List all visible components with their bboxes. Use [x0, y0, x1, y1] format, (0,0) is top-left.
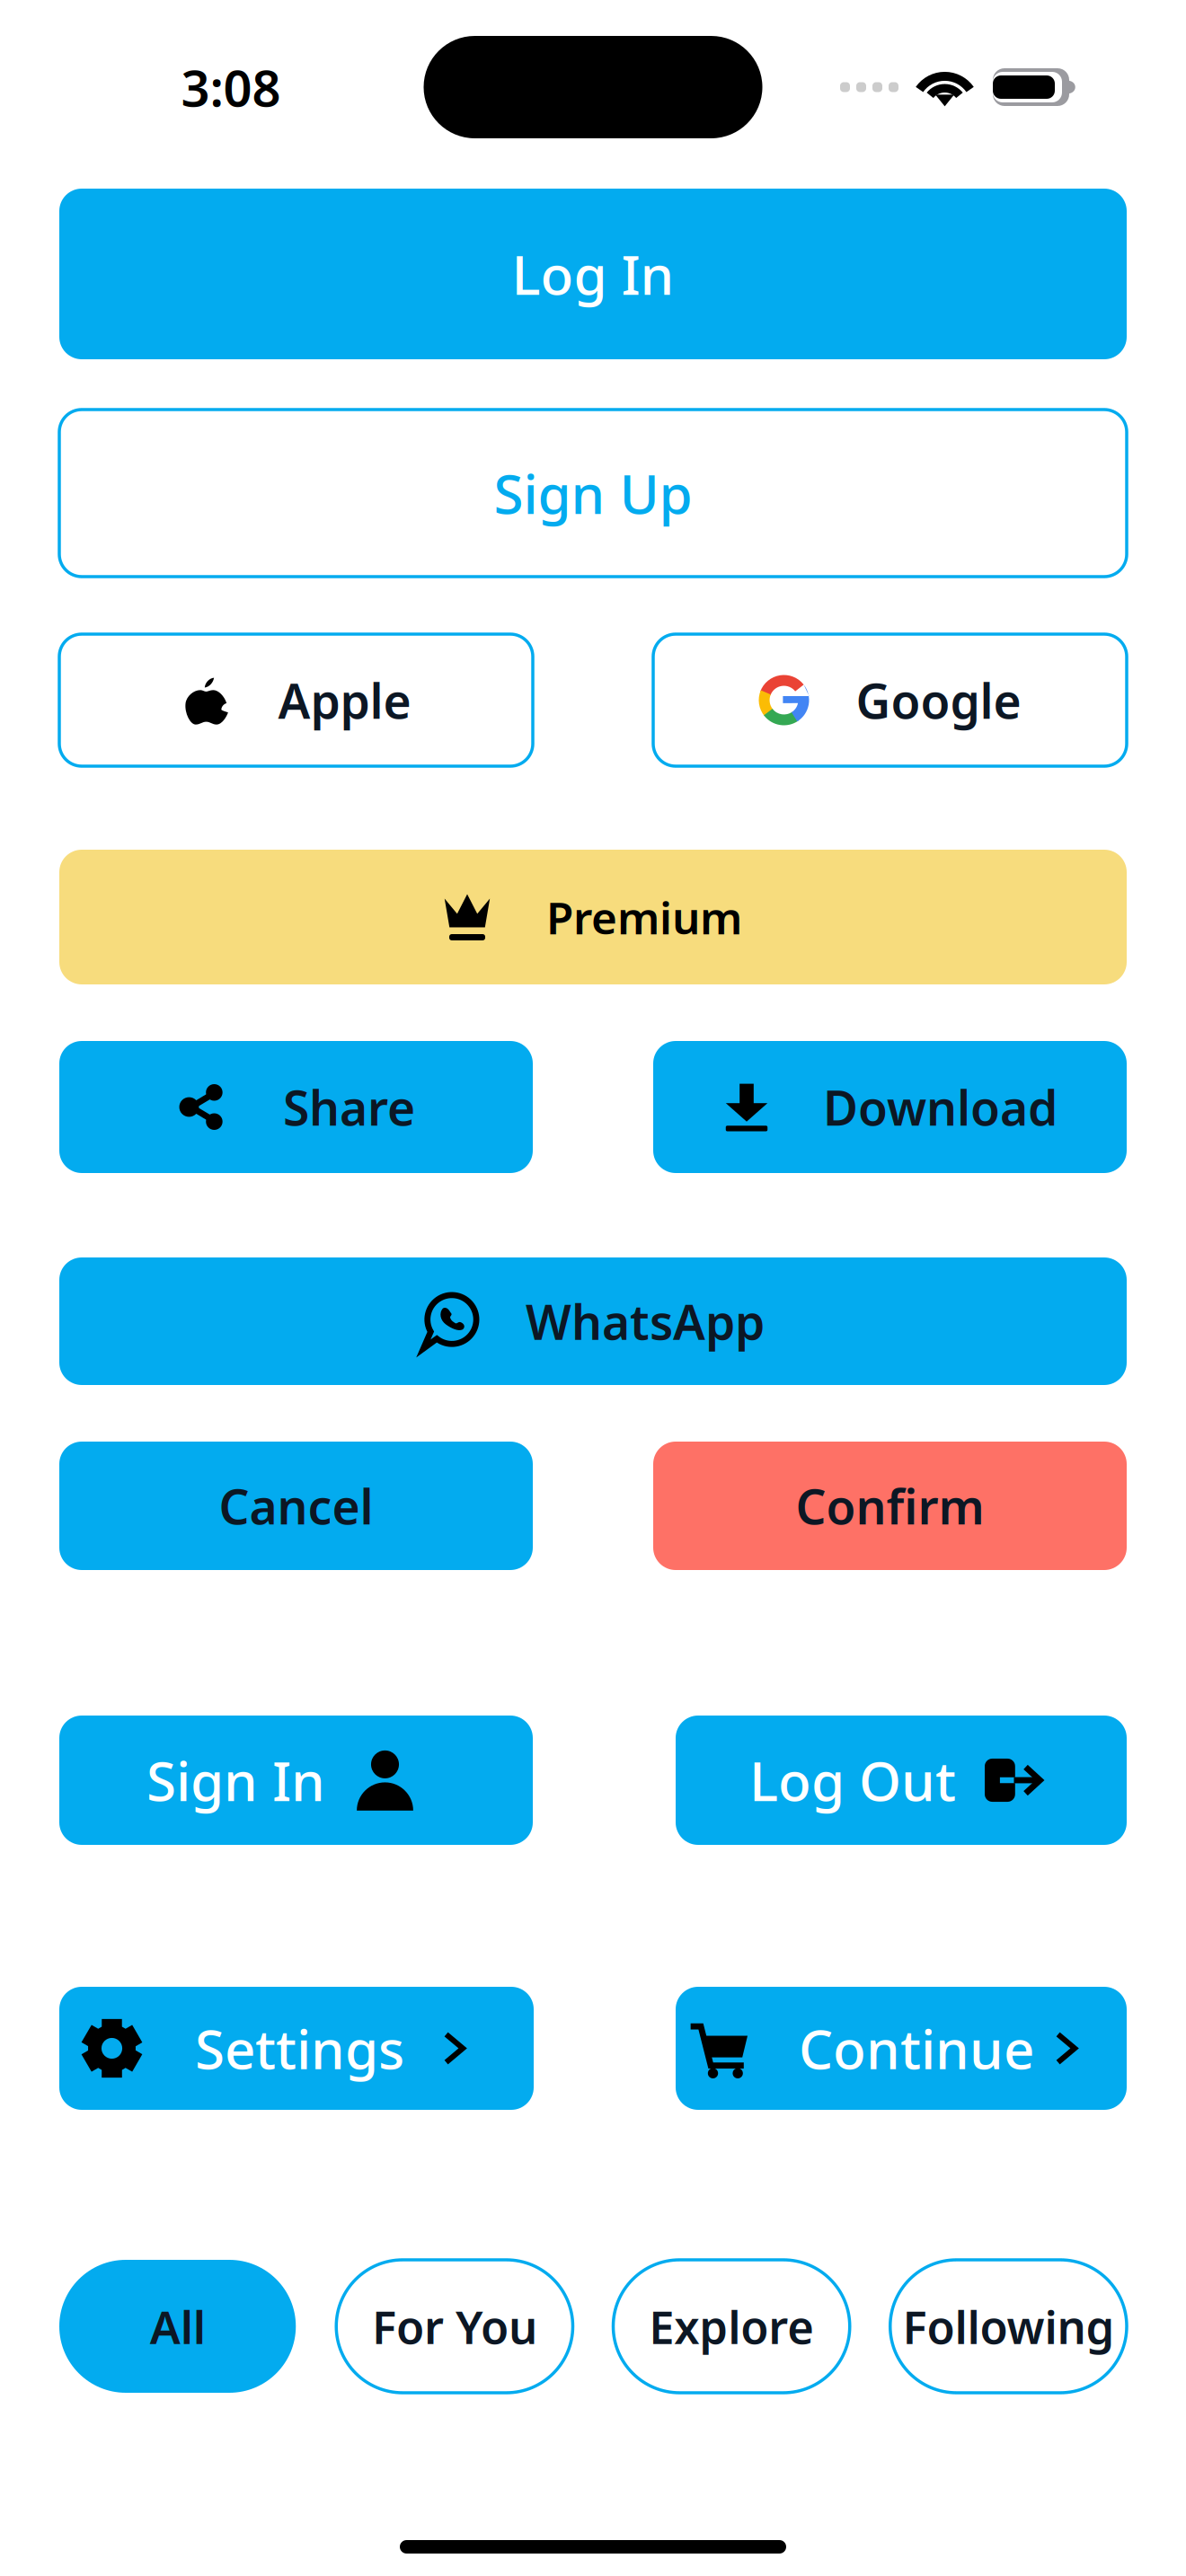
button[interactable]: Download [653, 1041, 1127, 1173]
button[interactable]: Confirm [653, 1442, 1127, 1570]
staticText: Premium [546, 888, 742, 946]
button[interactable]: Sign Up [59, 410, 1127, 577]
button[interactable]: Cancel [59, 1442, 533, 1570]
button[interactable]: All [59, 2260, 296, 2393]
button[interactable]: Log In [59, 189, 1127, 359]
button[interactable]: Settings [59, 1987, 534, 2110]
staticText: For You [372, 2296, 537, 2357]
staticText: Apple [278, 668, 411, 732]
staticText: Sign Up [494, 457, 692, 529]
button[interactable]: Google [653, 634, 1127, 766]
button[interactable]: Log Out [676, 1716, 1127, 1845]
staticText: Share [283, 1075, 415, 1139]
button[interactable]: Apple [59, 634, 533, 766]
staticText: Confirm [796, 1474, 984, 1538]
staticText: Download [823, 1075, 1058, 1139]
staticText: WhatsApp [526, 1289, 765, 1353]
staticText: 3:08 [181, 54, 281, 121]
staticText: Log Out [749, 1744, 956, 1816]
staticText: Cancel [219, 1474, 373, 1538]
button[interactable]: WhatsApp [59, 1257, 1127, 1385]
button[interactable]: Following [890, 2260, 1127, 2393]
button[interactable]: Sign In [59, 1716, 533, 1845]
button[interactable]: Explore [613, 2260, 850, 2393]
button[interactable]: Share [59, 1041, 533, 1173]
button[interactable]: Continue [676, 1987, 1127, 2110]
staticText: All [150, 2296, 205, 2357]
staticText: Sign In [146, 1744, 325, 1816]
staticText: Settings [195, 2013, 404, 2084]
button[interactable]: Premium [59, 850, 1127, 984]
staticText: Google [856, 668, 1021, 732]
staticText: Following [902, 2296, 1114, 2357]
staticText: Log In [512, 238, 674, 310]
button[interactable]: For You [336, 2260, 573, 2393]
staticText: Continue [799, 2013, 1034, 2084]
staticText: Explore [649, 2296, 814, 2357]
